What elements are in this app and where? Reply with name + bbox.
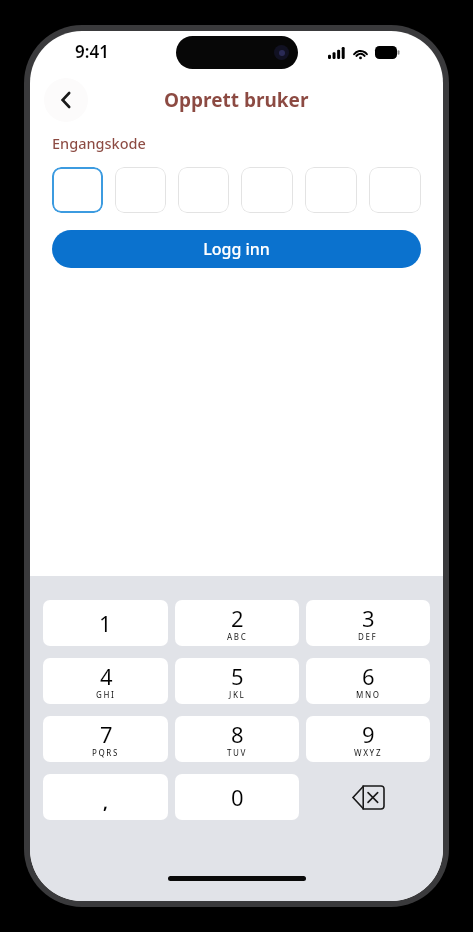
button[interactable]: 5 <box>175 658 299 704</box>
staticText: 2 <box>231 603 244 633</box>
button[interactable]: 1 <box>43 600 168 646</box>
staticText: WXYZ <box>354 747 383 758</box>
staticText: JKL <box>229 689 246 700</box>
button[interactable] <box>369 167 421 213</box>
staticText: 9:41 <box>75 40 109 63</box>
button[interactable] <box>178 167 229 213</box>
staticText: Opprett bruker <box>164 87 309 113</box>
staticText: 7 <box>100 719 113 749</box>
button[interactable]: Tilbake <box>44 78 88 122</box>
staticText: TUV <box>227 747 248 758</box>
button[interactable]: , <box>43 774 168 820</box>
button[interactable]: 3 <box>306 600 430 646</box>
button[interactable] <box>115 167 166 213</box>
staticText: 3 <box>362 603 375 633</box>
staticText: , <box>103 791 108 814</box>
staticText: Engangskode <box>52 133 146 153</box>
button[interactable]: Slett <box>306 774 430 820</box>
button[interactable]: 2 <box>175 600 299 646</box>
staticText: 4 <box>100 661 113 691</box>
staticText: 0 <box>231 782 244 812</box>
button[interactable]: Logg inn <box>52 230 421 268</box>
button[interactable]: 9 <box>306 716 430 762</box>
staticText: GHI <box>96 689 116 700</box>
staticText: 5 <box>231 661 244 691</box>
staticText: MNO <box>356 689 381 700</box>
staticText: DEF <box>358 631 378 642</box>
button[interactable]: 0 <box>175 774 299 820</box>
button[interactable] <box>52 167 103 213</box>
staticText: 1 <box>99 608 112 638</box>
button[interactable]: 8 <box>175 716 299 762</box>
staticText: 6 <box>362 661 375 691</box>
staticText: 8 <box>231 719 244 749</box>
button[interactable]: 7 <box>43 716 168 762</box>
button[interactable]: 4 <box>43 658 168 704</box>
button[interactable] <box>241 167 293 213</box>
staticText: Logg inn <box>203 238 270 260</box>
staticText: PQRS <box>92 747 120 758</box>
button[interactable]: 6 <box>306 658 430 704</box>
button[interactable] <box>305 167 357 213</box>
staticText: ABC <box>227 631 248 642</box>
staticText: 9 <box>362 719 375 749</box>
